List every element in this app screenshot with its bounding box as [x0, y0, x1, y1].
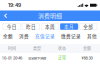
staticText: 消费	[19, 33, 29, 39]
button[interactable]: 充值记录	[35, 33, 55, 39]
staticText: 时间	[8, 46, 16, 51]
button[interactable]: 本周	[41, 23, 59, 30]
button[interactable]: 其他	[87, 33, 97, 39]
staticText: 10-01 20:46	[2, 56, 22, 60]
staticText: 其他	[87, 33, 97, 39]
staticText: 类型	[33, 46, 41, 51]
button[interactable]: 本月	[60, 23, 78, 30]
staticText: 金额	[83, 46, 91, 51]
staticText: 状态	[58, 46, 66, 51]
button[interactable]: 余额	[3, 33, 13, 39]
button[interactable]: 消费	[19, 33, 29, 39]
staticText: 19:49	[8, 2, 21, 8]
staticText: 余额	[3, 33, 13, 39]
button[interactable]: 缴费记录	[61, 33, 81, 39]
staticText: 充值记录	[35, 33, 55, 39]
button[interactable]: Back	[0, 10, 11, 21]
staticText: 食堂刷卡消费	[28, 56, 46, 60]
staticText: 全部	[83, 23, 93, 30]
staticText: 今日	[7, 23, 17, 30]
staticText: 本月	[64, 23, 74, 30]
button[interactable]: 全部	[79, 23, 97, 30]
staticText: ¥88.30	[81, 56, 92, 60]
button[interactable]: 昨日	[22, 23, 40, 30]
staticText: 消费明细	[38, 11, 62, 20]
staticText: 昨日	[26, 23, 36, 30]
staticText: 本周	[45, 23, 55, 30]
button[interactable]: 今日	[3, 23, 21, 30]
staticText: 缴费记录	[61, 33, 81, 39]
staticText: 正常	[58, 55, 66, 61]
button[interactable]: 10-01 20:46	[0, 53, 100, 63]
